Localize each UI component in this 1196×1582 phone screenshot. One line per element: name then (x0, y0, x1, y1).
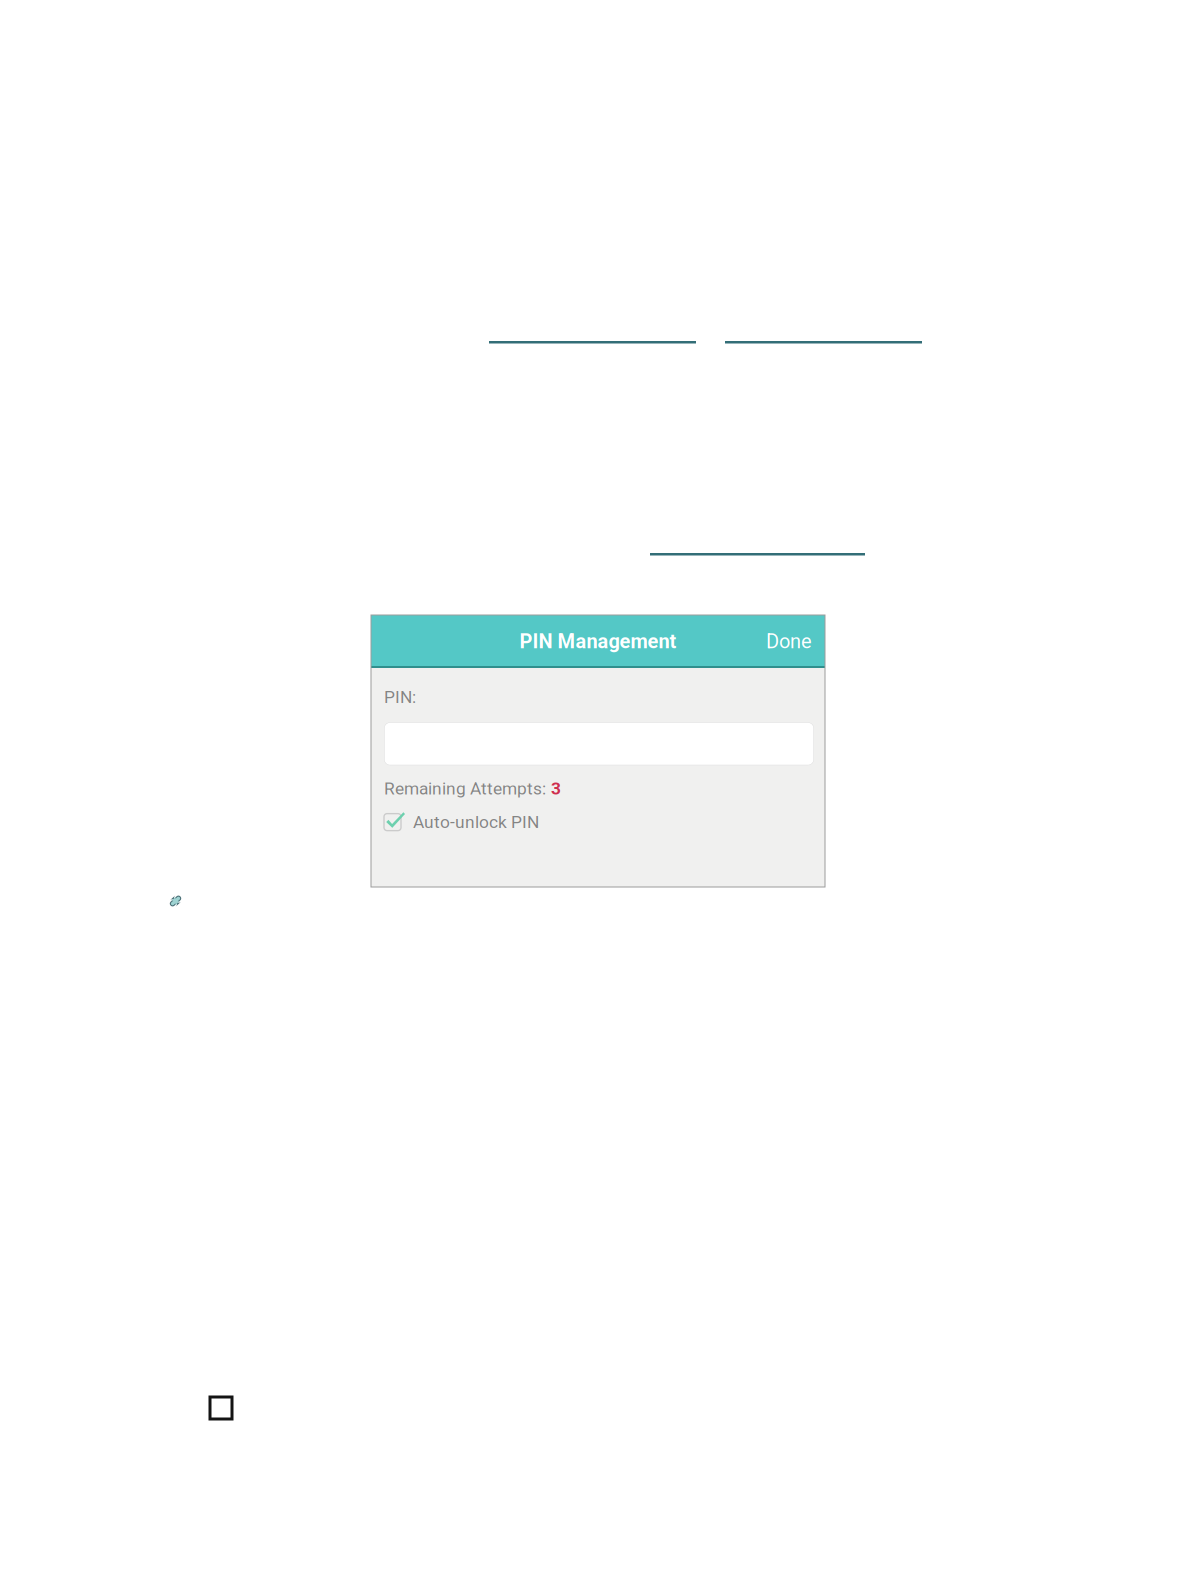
staticText: 3 (551, 778, 561, 799)
staticText: Remaining Attempts: (384, 778, 546, 799)
button[interactable]: Documentation link (650, 553, 865, 555)
button[interactable]: Attachment (169, 895, 182, 907)
button[interactable]: Done (761, 621, 817, 662)
staticText: PIN Management (519, 630, 676, 653)
staticText: Auto-unlock PIN (413, 812, 539, 832)
button[interactable]: Auto-unlock PIN (384, 811, 539, 834)
staticText: PIN: (384, 687, 416, 707)
staticText: Done (766, 630, 812, 653)
button[interactable]: Documentation link (489, 341, 696, 343)
button[interactable]: Documentation link (725, 341, 922, 343)
